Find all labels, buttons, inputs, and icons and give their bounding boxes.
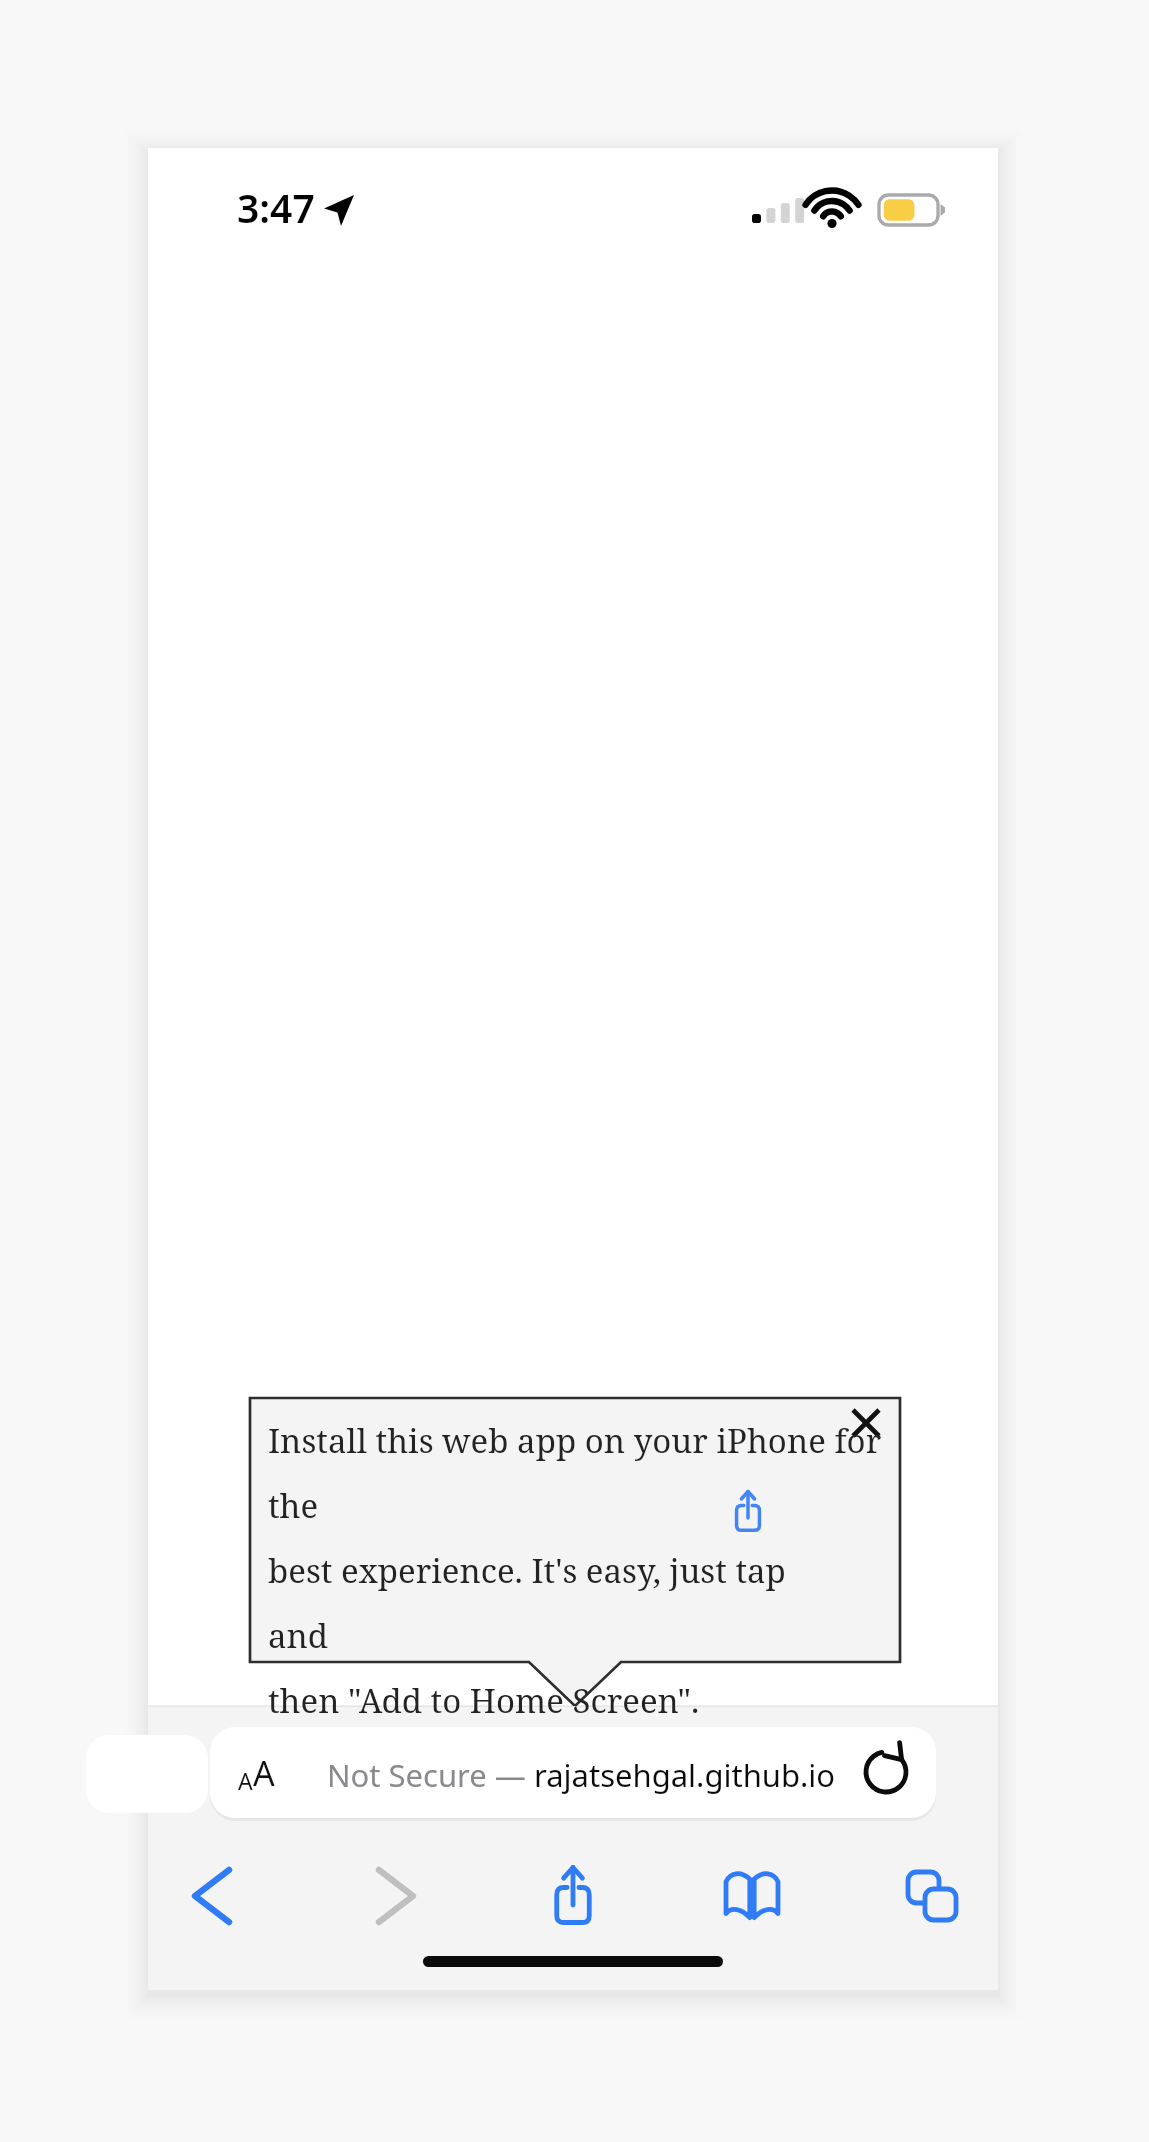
button[interactable]: Share (525, 1848, 621, 1944)
button[interactable]: Bookmarks (704, 1848, 800, 1944)
button[interactable]: Back (164, 1848, 260, 1944)
button[interactable]: Forward (348, 1848, 444, 1944)
button[interactable]: Tabs (884, 1848, 980, 1944)
staticText: Not Secure — (327, 1754, 534, 1796)
staticText: 3:47 (237, 181, 315, 234)
staticText: Install this web app on your iPhone for … (268, 1418, 884, 1723)
button[interactable]: Address field, rajatsehgal.github.io (210, 1727, 862, 1819)
staticText: A (253, 1750, 275, 1796)
button[interactable]: Reload page (852, 1738, 922, 1808)
staticText: A (238, 1765, 253, 1796)
button[interactable]: Close install banner (836, 1396, 900, 1456)
staticText: rajatsehgal.github.io (534, 1754, 836, 1796)
